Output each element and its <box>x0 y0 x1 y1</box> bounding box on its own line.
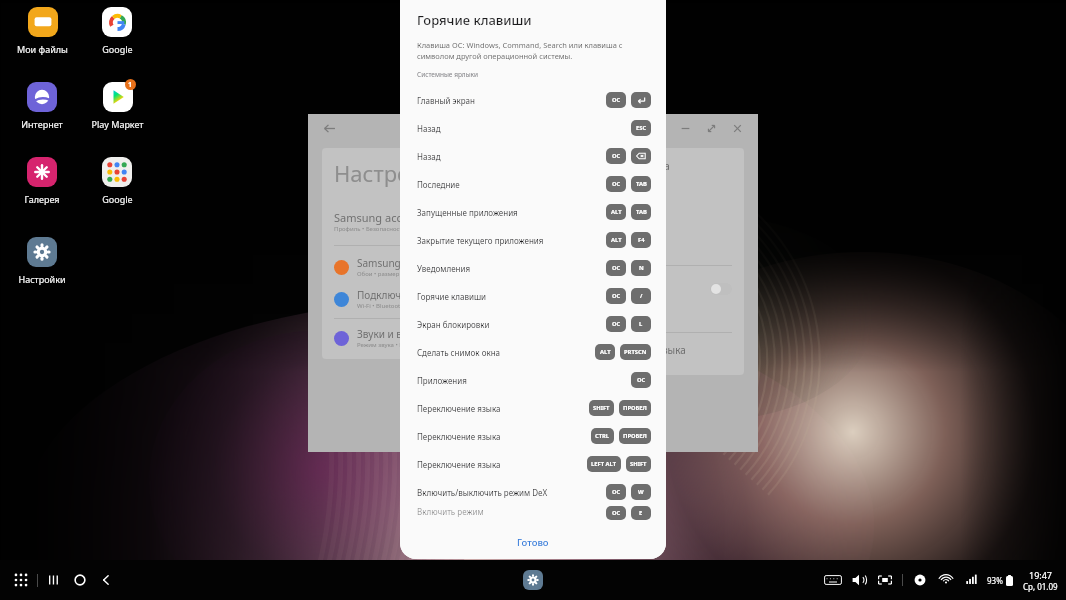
button[interactable]: Готово <box>400 525 666 559</box>
staticText: Системные ярлыки <box>417 70 479 79</box>
button[interactable]: Последние <box>400 170 666 198</box>
button[interactable]: Все приложения <box>8 567 34 593</box>
button[interactable]: Назад <box>400 114 666 142</box>
staticText: Главный экран <box>417 95 475 106</box>
staticText: TAB <box>636 208 647 216</box>
staticText: Ср, 01.09 <box>1023 581 1058 592</box>
staticText: Мои файлы <box>17 43 68 55</box>
button[interactable]: Подключения <box>334 288 506 310</box>
button[interactable]: Google <box>80 154 154 205</box>
button[interactable]: Горячие клавиши <box>400 282 666 310</box>
staticText: Последние <box>417 179 460 190</box>
staticText: Включить/выключить режим DeX <box>417 487 548 498</box>
staticText: N <box>639 264 644 272</box>
button[interactable]: Уведомления <box>907 567 933 593</box>
staticText: Сделать снимок окна <box>417 347 501 358</box>
button[interactable]: Настройки <box>5 234 79 285</box>
button[interactable]: Интернет <box>5 79 79 130</box>
button[interactable]: Мои файлы <box>5 4 79 55</box>
staticText: Переключение языка <box>417 431 501 442</box>
button[interactable]: Свернуть <box>672 115 698 141</box>
button[interactable]: Закрыть <box>724 115 750 141</box>
button[interactable]: 1 <box>80 79 154 130</box>
staticText: Экран блокировки <box>417 319 490 330</box>
staticText: Доступ к клавишам на экране. <box>542 314 632 322</box>
staticText: ОС <box>612 292 621 300</box>
staticText: ОС <box>612 180 621 188</box>
staticText: Клавиатуру <box>542 241 576 249</box>
button[interactable]: Развернуть <box>698 115 724 141</box>
button[interactable]: Переключение языка <box>400 450 666 478</box>
staticText: LEFT ALT <box>591 460 617 468</box>
staticText: SHIFT <box>593 404 610 412</box>
button[interactable]: Громкость <box>846 567 872 593</box>
staticText: ОС <box>612 264 621 272</box>
staticText: ОС <box>637 376 646 384</box>
staticText: Профиль • Безопасность <box>334 225 406 233</box>
button[interactable]: Назад <box>400 142 666 170</box>
staticText: Назад <box>417 123 441 134</box>
button[interactable]: Google <box>80 4 154 55</box>
staticText: Режим звука • Мелодия <box>357 341 426 349</box>
button[interactable]: Уведомления <box>400 254 666 282</box>
staticText: Google <box>102 43 133 55</box>
button[interactable]: Запущенные приложения <box>400 198 666 226</box>
staticText: Samsung DeX <box>357 256 423 270</box>
button[interactable]: Переключение языка <box>400 422 666 450</box>
staticText: ALT <box>611 236 622 244</box>
staticText: SHIFT <box>630 460 647 468</box>
staticText: 19:47 <box>1029 569 1053 581</box>
staticText: Уведомления <box>417 263 471 274</box>
button[interactable]: Переключатель <box>710 283 732 295</box>
button[interactable]: Переключение языка <box>400 394 666 422</box>
button[interactable]: Wi-Fi <box>933 567 959 593</box>
staticText: Интернет <box>21 118 63 130</box>
staticText: ПРОБЕЛ <box>623 432 647 440</box>
button[interactable]: Экран блокировки <box>400 310 666 338</box>
staticText: PRTSCN <box>624 348 647 356</box>
staticText: Горячие клавиши <box>417 291 487 302</box>
button[interactable]: Включить/выключить режим DeX <box>400 478 666 506</box>
staticText: Приложения <box>417 375 467 386</box>
staticText: Переключение языка <box>417 403 501 414</box>
staticText: Samsung account <box>334 210 426 225</box>
staticText: W <box>638 488 644 496</box>
button[interactable]: Галерея <box>5 154 79 205</box>
button[interactable]: Сделать снимок окна <box>400 338 666 366</box>
staticText: Настройки <box>18 273 66 285</box>
button[interactable]: Приложения <box>400 366 666 394</box>
button[interactable]: Снимок экрана <box>872 567 898 593</box>
button[interactable]: Главный экран <box>67 567 93 593</box>
staticText: ESC <box>636 124 647 132</box>
staticText: Скрывать при подключении клавиатуры. <box>542 292 662 300</box>
staticText: Play Маркет <box>91 118 144 130</box>
staticText: / <box>640 292 643 300</box>
button[interactable]: Звуки и вибрация <box>334 327 506 349</box>
staticText: L <box>639 320 643 328</box>
staticText: Звуки и вибрация <box>357 327 444 341</box>
staticText: E <box>639 509 643 517</box>
button[interactable]: Клавиатура <box>820 567 846 593</box>
button[interactable]: Закрытие текущего приложения <box>400 226 666 254</box>
staticText: English (US) <box>542 227 598 241</box>
staticText: ОС <box>612 488 621 496</box>
staticText: Переключение языка <box>417 459 501 470</box>
button[interactable]: Последние приложения <box>41 567 67 593</box>
staticText: ПРОБЕЛ <box>623 404 647 412</box>
button[interactable]: Настройки <box>522 569 544 591</box>
staticText: ALT <box>611 208 622 216</box>
staticText: ОС <box>612 152 621 160</box>
button[interactable]: Samsung DeX <box>334 256 506 278</box>
staticText: Закрытие текущего приложения <box>417 235 544 246</box>
staticText: ОС <box>612 320 621 328</box>
staticText: ОС <box>612 96 621 104</box>
button[interactable]: Главный экран <box>400 86 666 114</box>
staticText: CTRL <box>595 432 610 440</box>
staticText: ОС <box>612 509 621 517</box>
button[interactable]: Назад <box>318 117 340 139</box>
button[interactable]: Сигнал сети <box>959 567 985 593</box>
staticText: Включить режим <box>417 506 484 517</box>
staticText: Горячие клавиши <box>417 11 532 29</box>
button[interactable]: Назад <box>93 567 119 593</box>
